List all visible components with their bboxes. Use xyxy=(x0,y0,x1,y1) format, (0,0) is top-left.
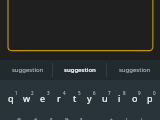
button[interactable]: ( xyxy=(119,107,134,120)
staticText: & xyxy=(80,117,84,120)
button[interactable]: 0 xyxy=(142,80,157,107)
staticText: ) xyxy=(141,117,143,120)
button[interactable]: 7 xyxy=(97,80,112,107)
staticText: j xyxy=(110,119,113,120)
button[interactable]: + xyxy=(104,107,119,120)
staticText: 2 xyxy=(31,90,34,96)
staticText: r xyxy=(57,92,61,104)
button[interactable]: # xyxy=(27,107,43,120)
staticText: 3 xyxy=(47,90,50,96)
staticText: suggestion xyxy=(12,66,44,74)
button[interactable]: 6 xyxy=(82,80,97,107)
staticText: y xyxy=(87,92,92,104)
staticText: $ xyxy=(50,117,53,120)
staticText: u xyxy=(102,92,108,104)
staticText: s xyxy=(33,119,38,120)
staticText: suggestion xyxy=(119,66,151,74)
staticText: 5 xyxy=(78,90,81,96)
button[interactable]: % xyxy=(59,107,74,120)
staticText: 7 xyxy=(108,90,111,96)
staticText: 6 xyxy=(93,90,96,96)
button[interactable]: 5 xyxy=(67,80,82,107)
staticText: 4 xyxy=(63,90,66,96)
staticText: # xyxy=(34,117,37,120)
staticText: p xyxy=(147,92,153,104)
staticText: + xyxy=(110,117,113,120)
button[interactable]: suggestion xyxy=(107,60,160,80)
staticText: l xyxy=(140,119,143,120)
button[interactable]: @ xyxy=(11,107,27,120)
button[interactable]: & xyxy=(74,107,89,120)
button[interactable]: 3 xyxy=(35,80,51,107)
staticText: 0 xyxy=(153,90,156,96)
button[interactable]: 1 xyxy=(3,80,19,107)
staticText: 1 xyxy=(15,90,18,96)
staticText: g xyxy=(79,119,85,120)
staticText: w xyxy=(23,92,31,104)
staticText: o xyxy=(132,92,138,104)
staticText: d xyxy=(48,119,54,120)
button[interactable]: 8 xyxy=(112,80,127,107)
staticText: f xyxy=(65,119,69,120)
staticText: i xyxy=(118,92,121,104)
button[interactable]: Message text field xyxy=(0,0,160,56)
staticText: 9 xyxy=(138,90,141,96)
button[interactable]: 4 xyxy=(51,80,67,107)
button[interactable]: 2 xyxy=(19,80,35,107)
button[interactable]: 9 xyxy=(127,80,142,107)
button[interactable]: suggestion xyxy=(0,60,52,80)
staticText: a xyxy=(16,119,22,120)
button[interactable]: suggestion xyxy=(53,60,106,80)
staticText: @ xyxy=(17,117,22,120)
button[interactable]: $ xyxy=(43,107,59,120)
staticText: t xyxy=(73,92,77,104)
staticText: % xyxy=(65,117,69,120)
staticText: ( xyxy=(126,117,128,120)
staticText: e xyxy=(40,92,46,104)
staticText: suggestion xyxy=(64,66,96,74)
button[interactable]: ) xyxy=(134,107,149,120)
staticText: 8 xyxy=(123,90,126,96)
staticText: q xyxy=(8,92,14,104)
staticText: k xyxy=(124,119,129,120)
